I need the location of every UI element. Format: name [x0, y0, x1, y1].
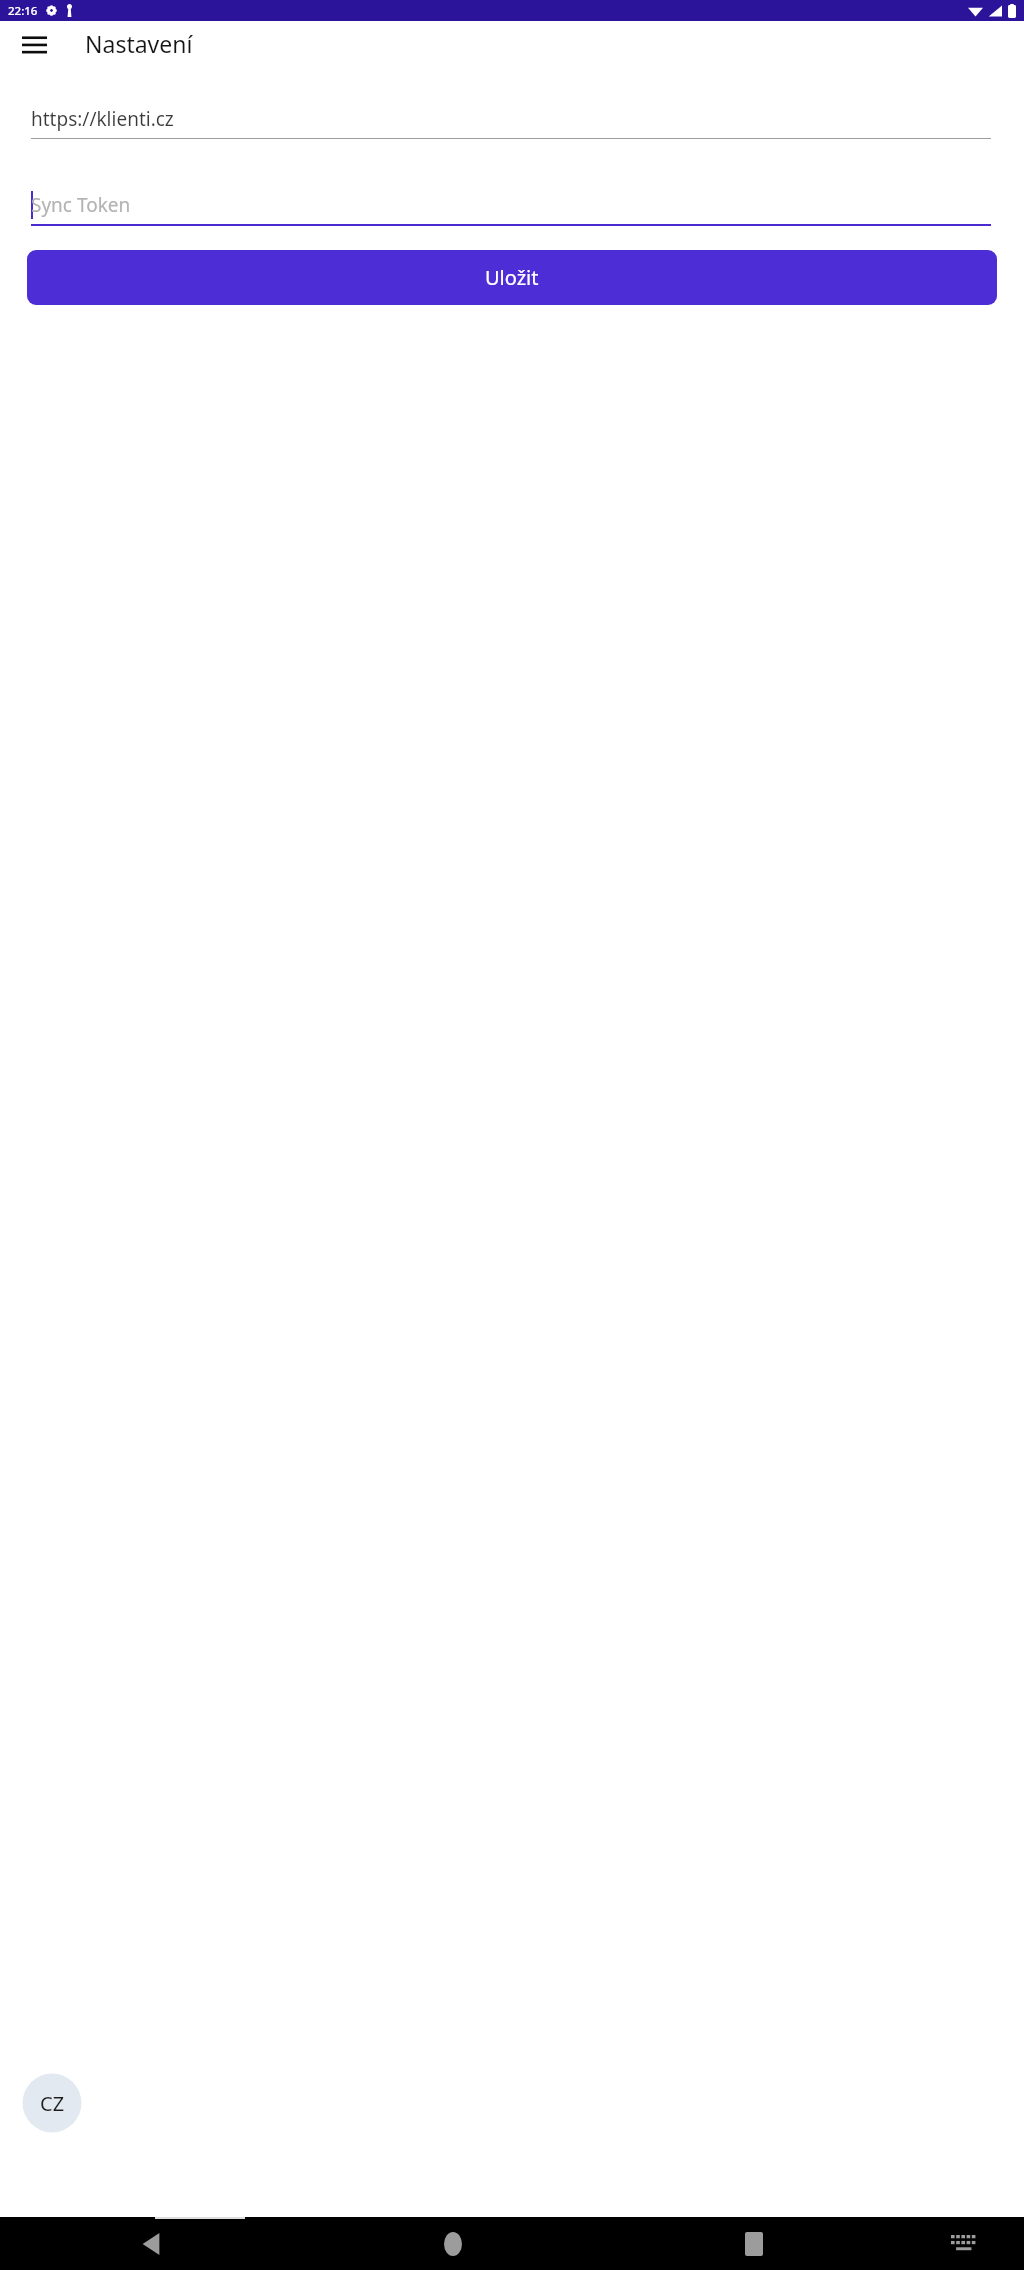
- button[interactable]: Show keyboard: [904, 2217, 1024, 2270]
- staticText: CZ: [40, 2090, 65, 2117]
- staticText: Nastavení: [85, 28, 193, 59]
- staticText: Sync Token: [31, 192, 131, 218]
- staticText: 22:16: [8, 3, 38, 19]
- button[interactable]: Home: [302, 2217, 603, 2270]
- button[interactable]: Open navigation menu: [10, 21, 58, 66]
- staticText: https://klienti.cz: [31, 106, 174, 132]
- button[interactable]: https://klienti.cz: [31, 106, 991, 139]
- button[interactable]: Uložit: [27, 250, 997, 305]
- button[interactable]: Back: [0, 2217, 302, 2270]
- button[interactable]: Recent apps: [603, 2217, 904, 2270]
- staticText: Uložit: [485, 264, 539, 291]
- button[interactable]: Sync Token: [31, 191, 991, 226]
- button[interactable]: CZ: [8, 2059, 96, 2147]
